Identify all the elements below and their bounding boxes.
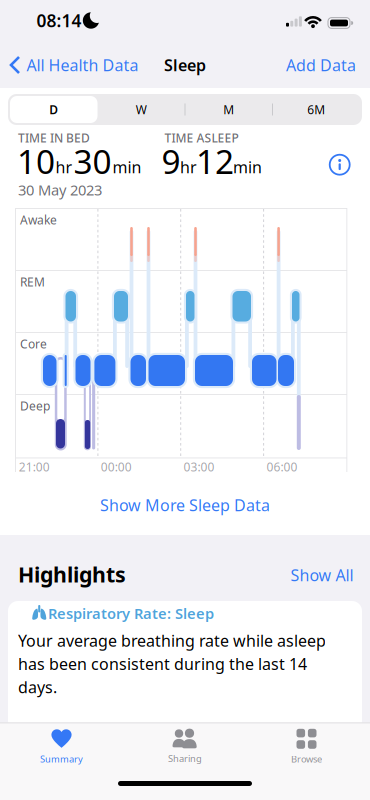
staticText: 12 (196, 139, 234, 183)
staticText: 10 (17, 139, 55, 183)
staticText: Highlights (18, 560, 126, 588)
button[interactable]: Respiratory Rate: Sleep (8, 601, 362, 731)
staticText: M (223, 101, 234, 117)
staticText: Sleep (164, 54, 206, 76)
staticText: All Health Data (26, 54, 138, 76)
staticText: 6M (307, 101, 325, 117)
staticText: Core (20, 336, 47, 352)
button[interactable]: 6M (273, 96, 360, 123)
staticText: 30 (73, 139, 111, 183)
staticText: min (112, 156, 141, 178)
staticText: min (233, 156, 262, 178)
button[interactable]: M (185, 96, 272, 123)
staticText: Show More Sleep Data (100, 494, 270, 516)
staticText: Respiratory Rate: Sleep (48, 603, 214, 623)
button[interactable]: W (98, 96, 185, 123)
staticText: hr (55, 156, 72, 178)
staticText: Add Data (286, 54, 356, 76)
staticText: Show All (290, 564, 353, 586)
staticText: 30 May 2023 (18, 180, 102, 199)
staticText: REM (20, 274, 45, 290)
staticText: 00:00 (101, 459, 132, 475)
button[interactable]: Add Data (286, 54, 356, 76)
staticText: Awake (20, 212, 57, 228)
staticText: TIME IN BED (18, 130, 90, 146)
staticText: W (136, 101, 147, 117)
staticText: 03:00 (184, 459, 215, 475)
button[interactable]: D (10, 96, 97, 123)
staticText: Sharing (168, 752, 202, 765)
button[interactable]: Summary (40, 729, 83, 765)
staticText: Browse (291, 753, 322, 765)
staticText: hr (180, 156, 197, 178)
staticText: Your average breathing rate while asleep… (18, 630, 326, 698)
button[interactable]: More Information (329, 154, 351, 176)
staticText: 08:14 (36, 9, 81, 32)
staticText: TIME ASLEEP (164, 130, 238, 146)
button[interactable]: Show More Sleep Data (100, 494, 270, 516)
button[interactable]: All Health Data (3, 54, 138, 76)
button[interactable]: Sharing (168, 729, 202, 765)
staticText: Deep (20, 398, 50, 414)
staticText: 06:00 (266, 459, 297, 475)
staticText: Summary (40, 753, 83, 765)
staticText: 21:00 (19, 459, 50, 475)
staticText: D (49, 101, 58, 117)
button[interactable]: Show All (290, 564, 353, 586)
staticText: 9 (161, 139, 180, 183)
button[interactable]: Browse (291, 729, 322, 765)
